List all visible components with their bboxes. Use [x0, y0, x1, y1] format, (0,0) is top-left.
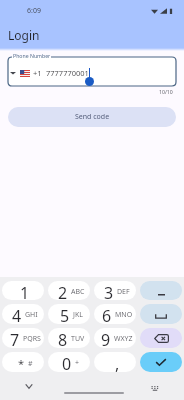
- staticText: 6: [102, 305, 112, 324]
- staticText: Login: [8, 27, 40, 43]
- button[interactable]: 4: [2, 304, 44, 324]
- button[interactable]: Space: [140, 304, 182, 324]
- staticText: 2: [58, 282, 68, 300]
- staticText: PQRS: [23, 334, 41, 344]
- staticText: ABC: [71, 287, 85, 297]
- staticText: TUV: [71, 334, 85, 344]
- staticText: GHI: [25, 310, 38, 320]
- button[interactable]: *: [2, 352, 44, 372]
- button[interactable]: Switch keyboard: [144, 377, 166, 399]
- staticText: 7: [10, 329, 20, 348]
- staticText: ,: [115, 353, 120, 372]
- staticText: MNO: [115, 310, 133, 320]
- button[interactable]: 3: [94, 281, 136, 300]
- button[interactable]: 8: [48, 328, 90, 348]
- staticText: 7777770001: [46, 68, 89, 78]
- staticText: 0: [62, 353, 72, 372]
- button[interactable]: 9: [94, 328, 136, 348]
- staticText: #: [28, 359, 33, 369]
- button[interactable]: 1: [2, 281, 44, 300]
- staticText: 6:09: [27, 6, 41, 16]
- staticText: *: [18, 356, 25, 371]
- staticText: Send code: [75, 112, 110, 122]
- staticText: +1: [33, 68, 42, 78]
- button[interactable]: 5: [48, 304, 90, 324]
- staticText: 9: [101, 329, 111, 348]
- button[interactable]: Enter: [140, 352, 182, 372]
- staticText: 4: [12, 305, 22, 324]
- button[interactable]: Send code: [8, 107, 176, 127]
- staticText: 10/10: [159, 88, 173, 95]
- button[interactable]: 7: [2, 328, 44, 348]
- staticText: Phone Number: [13, 52, 51, 59]
- button[interactable]: 0: [48, 352, 90, 372]
- button[interactable]: 2: [48, 281, 90, 300]
- staticText: 3: [104, 282, 114, 300]
- button[interactable]: Dash: [140, 281, 182, 300]
- button[interactable]: 6: [94, 304, 136, 324]
- staticText: JKL: [73, 310, 83, 320]
- staticText: +: [75, 358, 80, 368]
- button[interactable]: Hide keyboard: [18, 375, 40, 397]
- staticText: 1: [20, 282, 30, 300]
- button[interactable]: Backspace: [140, 328, 182, 348]
- staticText: WXYZ: [114, 334, 133, 344]
- button[interactable]: [8, 57, 176, 86]
- staticText: DEF: [117, 287, 130, 297]
- button[interactable]: ,: [94, 352, 136, 372]
- staticText: 5: [60, 305, 70, 324]
- staticText: 8: [58, 329, 68, 348]
